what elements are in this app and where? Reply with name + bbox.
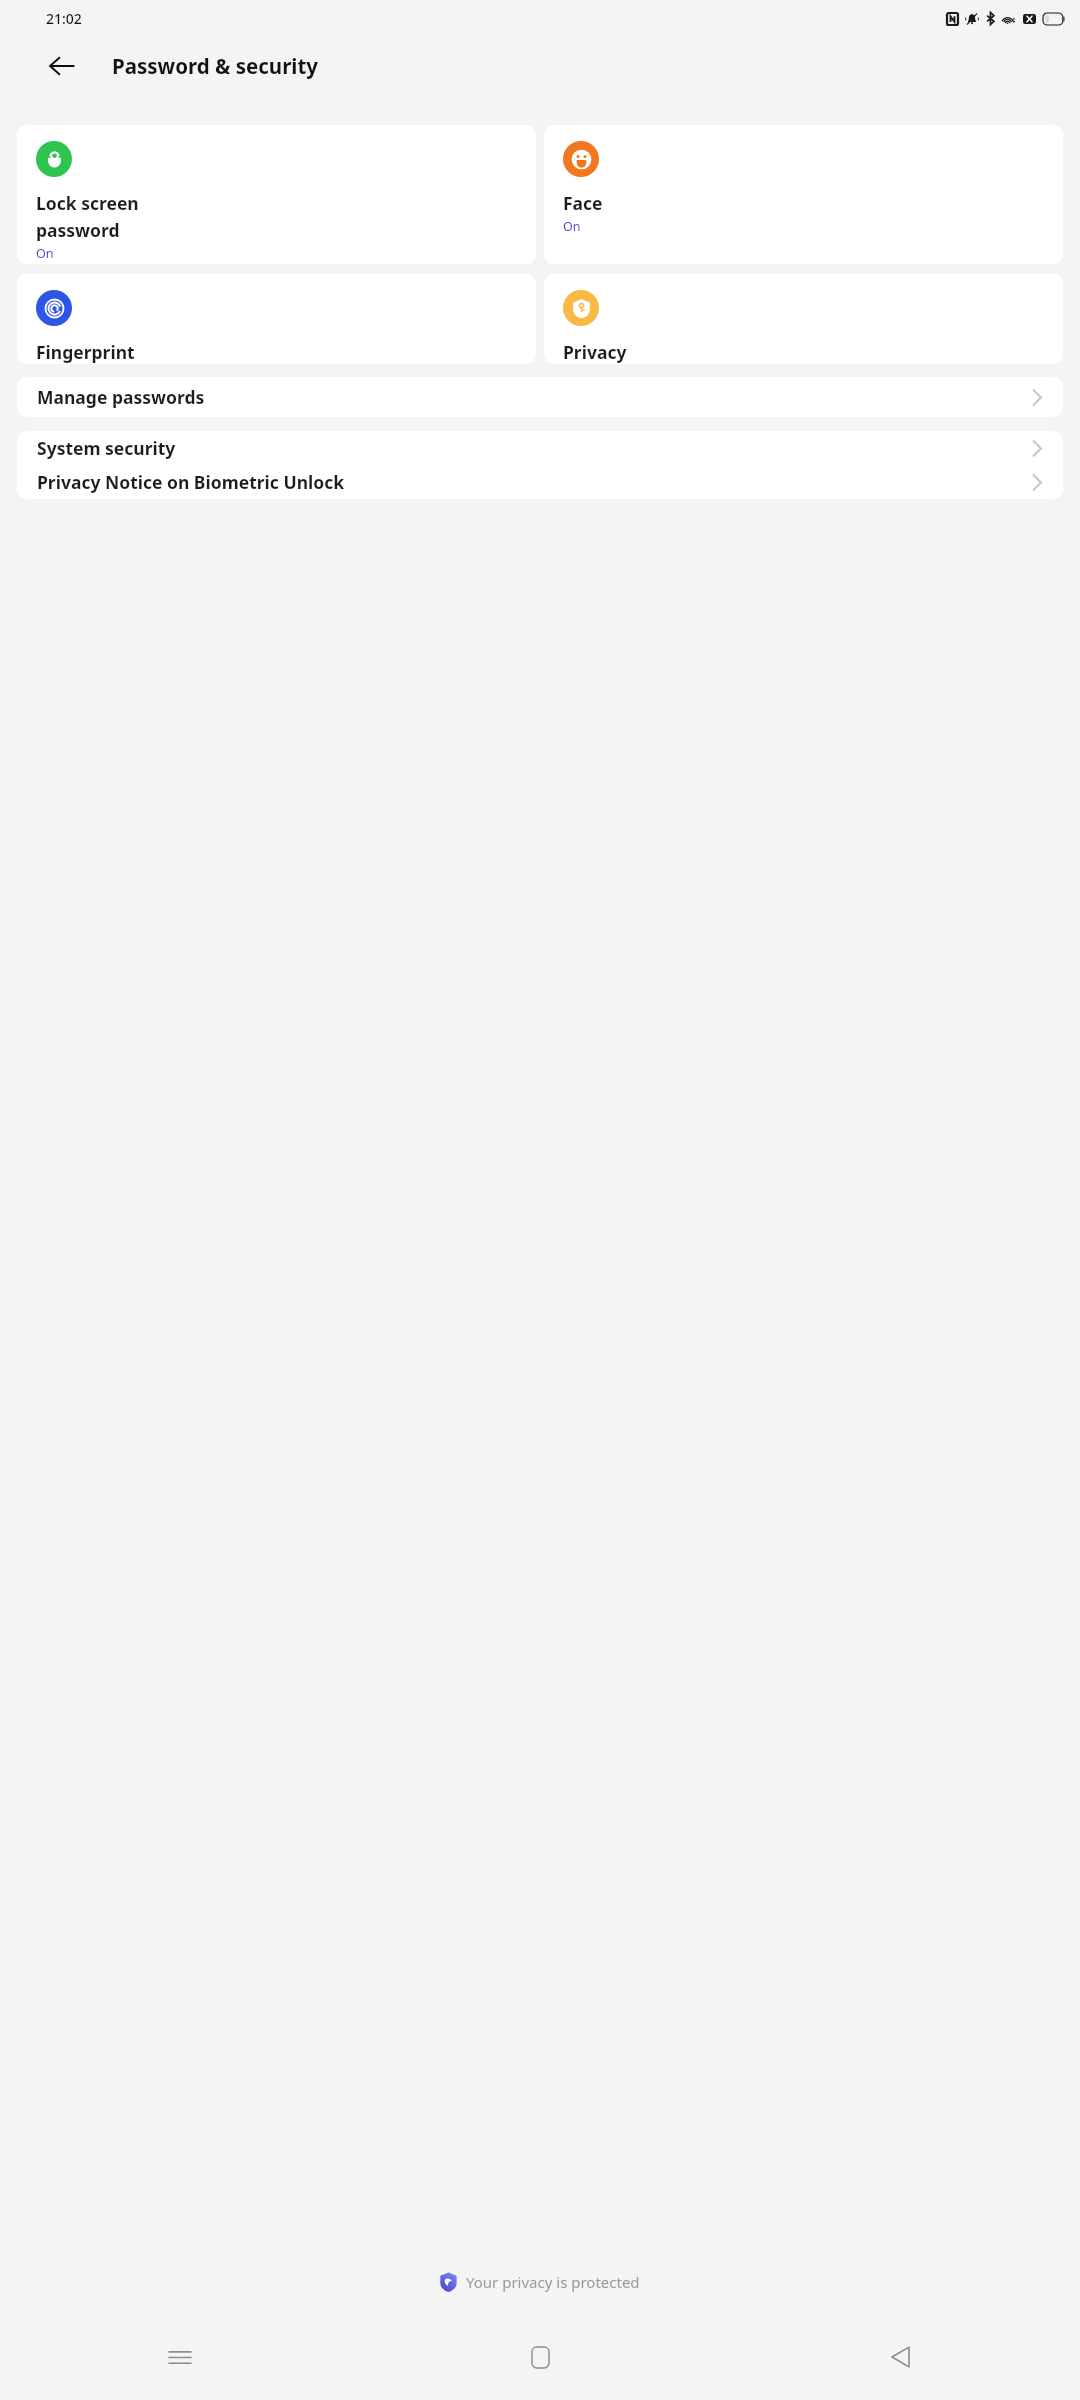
button[interactable]: Face <box>544 125 1063 264</box>
staticText: Privacy Notice on Biometric Unlock <box>37 470 345 494</box>
staticText: Privacy password <box>563 340 647 364</box>
button[interactable]: Manage passwords <box>17 377 1063 417</box>
staticText: Manage passwords <box>37 385 205 409</box>
staticText: Your privacy is protected <box>466 2272 640 2292</box>
staticText: Lock screen password <box>36 191 139 242</box>
button[interactable]: Back <box>720 2336 1080 2378</box>
staticText: Face <box>563 191 603 215</box>
staticText: 21:02 <box>46 9 82 28</box>
staticText: Fingerprint <box>36 340 135 364</box>
button[interactable]: System security <box>17 431 1063 465</box>
staticText: On <box>563 218 581 235</box>
button[interactable]: Recent apps <box>0 2336 360 2378</box>
staticText: Password & security <box>112 52 319 80</box>
button[interactable]: Privacy Notice on Biometric Unlock <box>17 465 1063 499</box>
button[interactable]: Fingerprint <box>17 274 536 364</box>
button[interactable]: Back <box>44 48 80 84</box>
staticText: System security <box>37 436 176 460</box>
staticText: On <box>36 245 54 262</box>
button[interactable]: Home <box>360 2336 720 2378</box>
button[interactable]: Privacy password <box>544 274 1063 364</box>
button[interactable]: Lock screen password <box>17 125 536 264</box>
